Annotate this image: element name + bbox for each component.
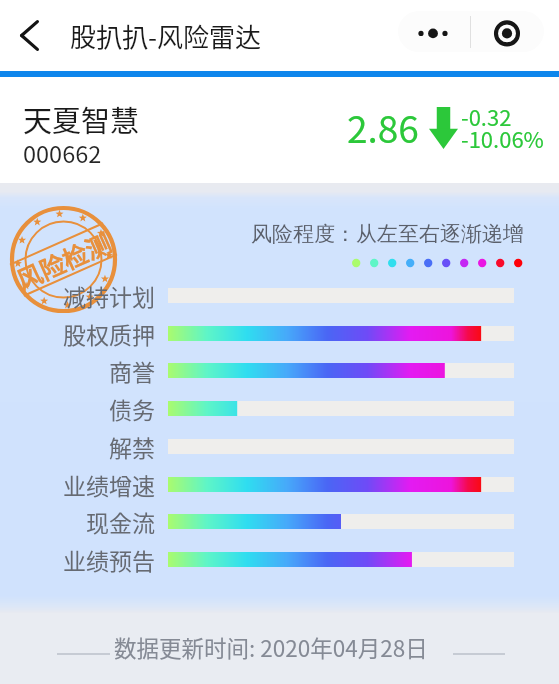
staticText: 风险程度：从左至右逐渐递增 [251, 221, 524, 247]
button[interactable]: 现金流 [0, 502, 559, 540]
staticText: 现金流 [86, 505, 155, 538]
button[interactable]: 减持计划 [0, 276, 559, 314]
button[interactable]: Options [471, 11, 544, 52]
staticText: -0.32 [461, 100, 512, 132]
button[interactable]: More [398, 11, 470, 52]
staticText: 股扒扒-风险雷达 [70, 17, 262, 55]
staticText: 股权质押 [63, 317, 155, 350]
button[interactable]: Back [0, 0, 58, 71]
staticText: 天夏智慧 [23, 98, 140, 140]
staticText: 风险检测 [10, 223, 117, 297]
button[interactable]: 商誉 [0, 351, 559, 389]
button[interactable]: 股权质押 [0, 314, 559, 352]
staticText: 000662 [23, 136, 102, 170]
button[interactable]: 解禁 [0, 427, 559, 465]
staticText: 解禁 [109, 430, 155, 463]
staticText: 减持计划 [63, 279, 155, 312]
staticText: 业绩增速 [63, 468, 155, 501]
button[interactable]: 业绩增速 [0, 465, 559, 503]
staticText: 数据更新时间: 2020年04月28日 [114, 631, 428, 664]
staticText: 业绩预告 [63, 543, 155, 576]
staticText: 2.86 [347, 100, 419, 154]
button[interactable]: 业绩预告 [0, 540, 559, 578]
staticText: 债务 [109, 392, 155, 425]
staticText: -10.06% [461, 122, 544, 154]
button[interactable]: 债务 [0, 389, 559, 427]
staticText: 商誉 [109, 354, 155, 387]
